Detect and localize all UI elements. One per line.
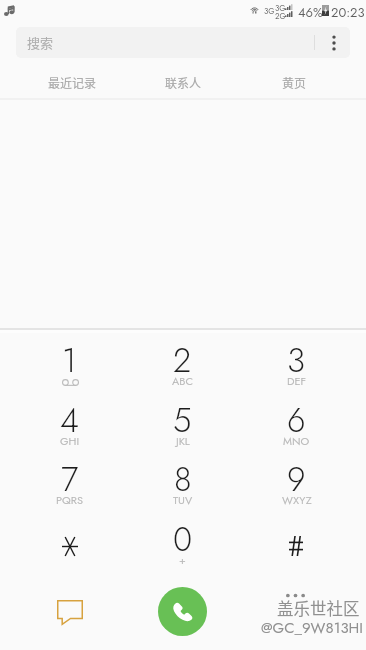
staticText: 1 [62, 337, 77, 385]
button[interactable]: Call [158, 587, 207, 636]
staticText: 8 [174, 456, 192, 504]
button[interactable]: 黄页 [239, 66, 350, 98]
button[interactable]: 联系人 [128, 66, 239, 98]
staticText: 3G [264, 5, 275, 17]
staticText: 联系人 [165, 74, 202, 91]
button[interactable]: 最近记录 [16, 66, 128, 98]
staticText: 3 [287, 337, 306, 385]
staticText: 2 [173, 337, 192, 385]
button[interactable]: 5 [126, 393, 239, 453]
button[interactable] [240, 512, 353, 572]
button[interactable]: 9 [240, 452, 353, 512]
staticText: 7 [61, 456, 79, 504]
button[interactable]: 0 [126, 512, 239, 572]
staticText: JKL [176, 433, 190, 449]
staticText: ABC [172, 373, 193, 389]
staticText: 4 [60, 397, 79, 445]
staticText: 最近记录 [48, 74, 97, 91]
staticText: GHI [60, 433, 80, 449]
staticText: + [179, 552, 186, 568]
button[interactable]: 2 [126, 333, 239, 393]
staticText: MNO [283, 433, 310, 449]
button[interactable]: More options [319, 27, 349, 58]
button[interactable]: 3 [240, 333, 353, 393]
staticText: PQRS [56, 492, 83, 508]
button[interactable]: 7 [13, 452, 126, 512]
button[interactable]: 1 [13, 333, 126, 393]
button[interactable]: 搜索 [16, 27, 350, 58]
staticText: 搜索 [27, 33, 54, 52]
staticText: 3G [275, 2, 286, 14]
staticText: 9 [287, 456, 306, 504]
staticText: 黄页 [282, 74, 307, 91]
staticText: 6 [287, 397, 306, 445]
staticText: 2G [275, 10, 286, 22]
button[interactable]: 4 [13, 393, 126, 453]
staticText: 5 [173, 397, 192, 445]
staticText: 盖乐世社区 [277, 596, 360, 620]
staticText: WXYZ [282, 492, 312, 508]
staticText: TUV [173, 492, 193, 508]
staticText: @GC_9W813HI [261, 617, 363, 639]
button[interactable] [13, 512, 126, 572]
staticText: 46% [298, 3, 323, 22]
button[interactable]: 8 [126, 452, 239, 512]
staticText: 20:23 [331, 3, 365, 22]
staticText: 0 [173, 516, 193, 564]
button[interactable]: 6 [240, 393, 353, 453]
button[interactable]: Message [47, 589, 93, 635]
staticText: DEF [287, 373, 307, 389]
